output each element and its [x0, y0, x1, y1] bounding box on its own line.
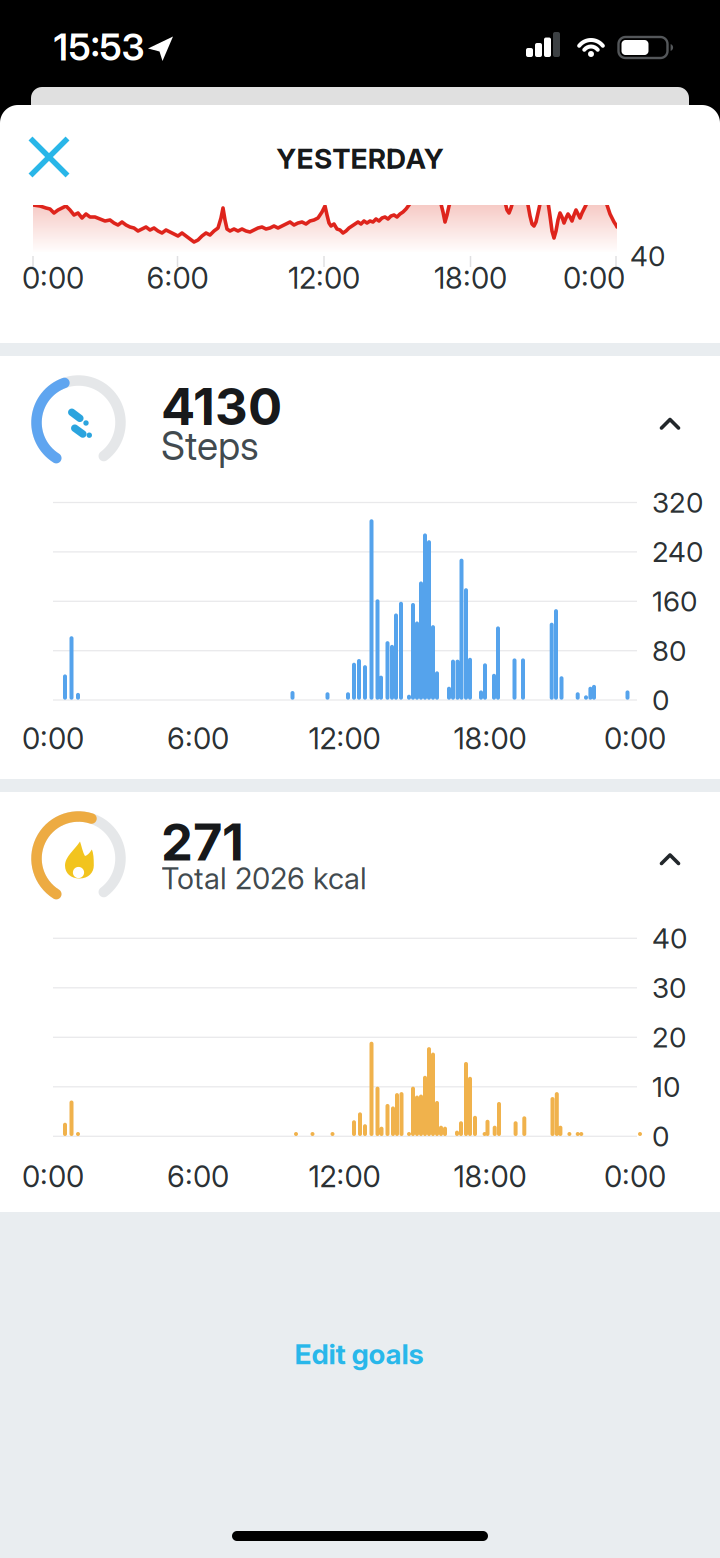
staticText: 18:00 — [434, 261, 507, 295]
staticText: 0:00 — [604, 1159, 666, 1194]
button[interactable] — [27, 135, 71, 179]
staticText: 18:00 — [453, 721, 526, 756]
staticText: 12:00 — [308, 721, 380, 756]
staticText: Steps — [161, 423, 259, 469]
staticText: 10 — [652, 1070, 680, 1103]
staticText: 6:00 — [167, 1159, 229, 1194]
staticText: 0:00 — [563, 261, 625, 295]
staticText: 12:00 — [288, 261, 360, 295]
staticText: 0 — [652, 683, 669, 716]
staticText: Total 2026 kcal — [161, 861, 367, 896]
staticText: 40 — [652, 922, 687, 955]
staticText: 4130 — [161, 377, 282, 436]
staticText: 320 — [652, 486, 703, 519]
button[interactable]: Edit goals — [259, 1324, 459, 1384]
staticText: 0:00 — [604, 721, 666, 756]
staticText: 0 — [652, 1120, 669, 1153]
button[interactable] — [648, 837, 692, 881]
staticText: 18:00 — [453, 1159, 526, 1194]
staticText: YESTERDAY — [276, 142, 444, 175]
staticText: 30 — [652, 971, 686, 1004]
staticText: 40 — [630, 239, 665, 272]
staticText: 6:00 — [146, 261, 208, 295]
staticText: 80 — [652, 634, 686, 667]
staticText: 0:00 — [22, 261, 84, 295]
staticText: Edit goals — [294, 1337, 423, 1370]
staticText: 0:00 — [22, 721, 84, 756]
staticText: 240 — [652, 535, 703, 568]
staticText: 271 — [161, 812, 244, 872]
button[interactable] — [648, 401, 692, 445]
staticText: 0:00 — [22, 1159, 84, 1194]
staticText: 20 — [652, 1021, 686, 1054]
staticText: 15:53 — [53, 25, 144, 69]
staticText: 6:00 — [167, 721, 229, 756]
staticText: 12:00 — [308, 1159, 380, 1194]
staticText: 160 — [652, 585, 697, 618]
